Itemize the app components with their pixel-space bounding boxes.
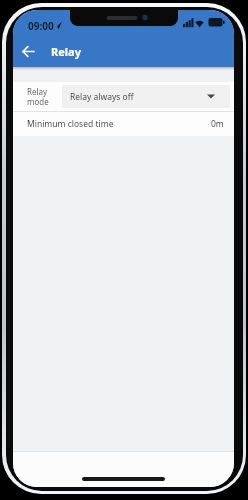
button[interactable]: Relay always off	[62, 85, 230, 108]
staticText: Relay always off	[70, 91, 134, 103]
staticText: 09:00	[28, 19, 54, 33]
button[interactable]	[17, 40, 51, 64]
button[interactable]: Minimum closed time	[13, 112, 234, 136]
staticText: 0m	[211, 118, 224, 130]
staticText: Minimum closed time	[27, 118, 114, 130]
staticText: Relay mode	[27, 86, 49, 108]
staticText: Relay	[51, 44, 81, 59]
button[interactable]: Relay mode	[13, 82, 234, 111]
